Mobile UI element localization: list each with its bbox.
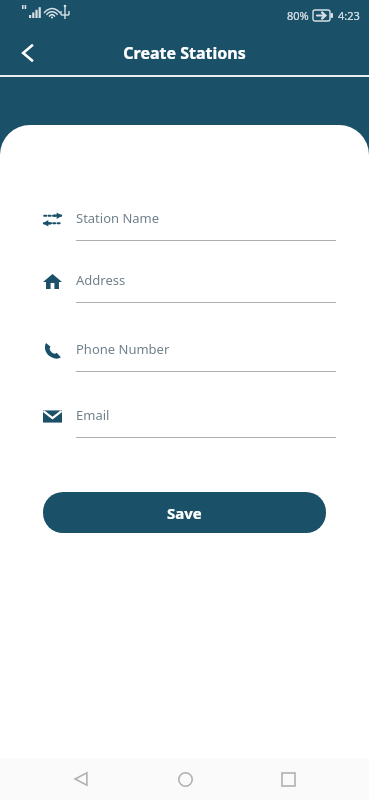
staticText: Create Stations xyxy=(123,42,246,64)
button[interactable]: Address xyxy=(76,261,336,303)
other: Email xyxy=(40,404,64,428)
button[interactable]: Recent apps xyxy=(266,758,310,800)
button[interactable]: Back xyxy=(59,758,103,800)
other: Phone number xyxy=(40,338,64,362)
staticText: Save xyxy=(167,503,202,523)
staticText: Address xyxy=(76,271,126,289)
button[interactable]: Home xyxy=(163,758,207,800)
button[interactable]: Save xyxy=(43,492,326,533)
other: Station name xyxy=(40,207,64,231)
button[interactable]: Email xyxy=(76,396,336,438)
other: Address xyxy=(40,269,64,293)
staticText: Station Name xyxy=(76,209,160,227)
button[interactable]: Back xyxy=(8,33,48,73)
button[interactable]: Phone Number xyxy=(76,330,336,372)
staticText: 80% xyxy=(287,8,309,23)
staticText: Phone Number xyxy=(76,340,170,358)
staticText: Email xyxy=(76,406,110,424)
button[interactable]: Station Name xyxy=(76,199,336,241)
staticText: 4:23 xyxy=(338,8,360,23)
